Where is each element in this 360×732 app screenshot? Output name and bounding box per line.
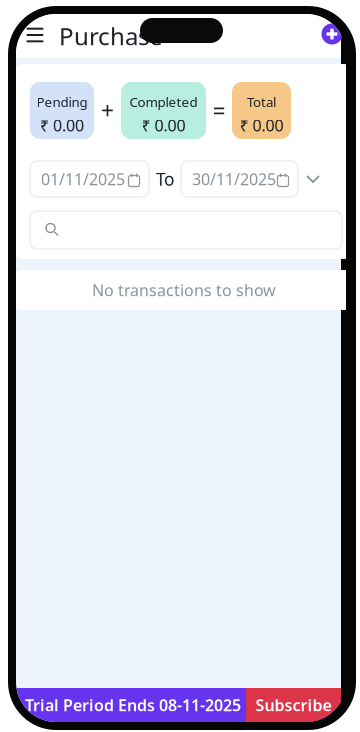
staticText: Subscribe (255, 694, 331, 716)
staticText: ₹ 0.00 (40, 115, 84, 136)
button[interactable]: Add (317, 19, 347, 49)
staticText: No transactions to show (92, 279, 276, 301)
button[interactable]: 01/11/2025 (30, 161, 149, 197)
staticText: Trial Period Ends 08-11-2025 (25, 694, 241, 716)
staticText: 01/11/2025 (41, 168, 125, 190)
staticText: ₹ 0.00 (141, 115, 185, 136)
button[interactable]: Subscribe (246, 688, 341, 722)
button[interactable]: Menu (18, 18, 52, 52)
staticText: Total (247, 93, 276, 111)
staticText: 30/11/2025 (192, 168, 276, 190)
staticText: Pending (36, 93, 87, 111)
staticText: Completed (129, 93, 197, 111)
staticText: ₹ 0.00 (239, 115, 283, 136)
staticText: + (101, 95, 114, 125)
button[interactable]: Search (30, 211, 342, 249)
staticText: To (156, 167, 174, 190)
button[interactable]: 30/11/2025 (181, 161, 298, 197)
button[interactable]: More options (298, 164, 328, 194)
staticText: Purchase (59, 20, 163, 52)
staticText: = (212, 95, 225, 125)
